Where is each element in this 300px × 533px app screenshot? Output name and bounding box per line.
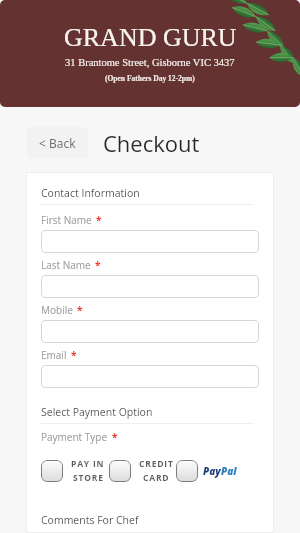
staticText: Last Name [41, 258, 91, 272]
staticText: First Name [41, 213, 92, 227]
staticText: * [96, 213, 102, 227]
staticText: 31 Brantome Street, Gisborne VIC 3437 [65, 57, 235, 69]
staticText: Payment Type [41, 430, 108, 444]
staticText: Pal [221, 464, 237, 478]
button[interactable]: < Back [27, 127, 88, 159]
staticText: Email [41, 348, 67, 362]
staticText: * [77, 303, 83, 317]
staticText: (Open Fathers Day 12-2pm) [105, 74, 195, 82]
staticText: GRAND GURU [64, 23, 237, 52]
staticText: CREDIT [139, 458, 174, 470]
button[interactable] [41, 365, 259, 388]
staticText: PAY IN [71, 458, 105, 470]
staticText: CARD [143, 472, 170, 484]
staticText: Checkout [103, 128, 200, 158]
button[interactable] [41, 320, 259, 343]
staticText: * [95, 258, 101, 272]
staticText: Pay [203, 464, 221, 478]
staticText: Select Payment Option [41, 405, 153, 419]
button[interactable]: CREDIT [109, 458, 174, 484]
button[interactable]: PAY IN [41, 458, 105, 484]
staticText: Contact Information [41, 186, 140, 200]
button[interactable] [41, 230, 259, 253]
staticText: Mobile [41, 303, 73, 317]
staticText: STORE [73, 472, 104, 484]
staticText: * [71, 348, 77, 362]
staticText: < Back [39, 135, 76, 151]
staticText: * [112, 430, 118, 444]
button[interactable]: Pay [176, 460, 237, 482]
staticText: Comments For Chef [41, 513, 139, 527]
button[interactable] [41, 275, 259, 298]
